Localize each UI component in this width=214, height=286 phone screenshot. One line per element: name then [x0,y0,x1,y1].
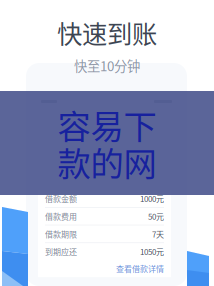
button[interactable]: 查看借款详情 [38,260,171,277]
staticText: 借款费用 [45,210,77,222]
staticText: 50元 [148,210,164,222]
staticText: 借款期限 [45,228,77,240]
staticText: 1050元 [140,246,164,257]
staticText: 查看借款详情 [116,263,164,274]
staticText: 7天 [152,228,164,240]
staticText: 借款金额 [45,193,77,204]
staticText: 1000元 [140,193,164,204]
staticText: 款的网 [57,137,156,186]
staticText: 容易下 [57,100,156,148]
staticText: 快速到账 [57,14,157,51]
staticText: 快至10分钟 [74,56,140,75]
staticText: 到期应还 [45,246,77,257]
